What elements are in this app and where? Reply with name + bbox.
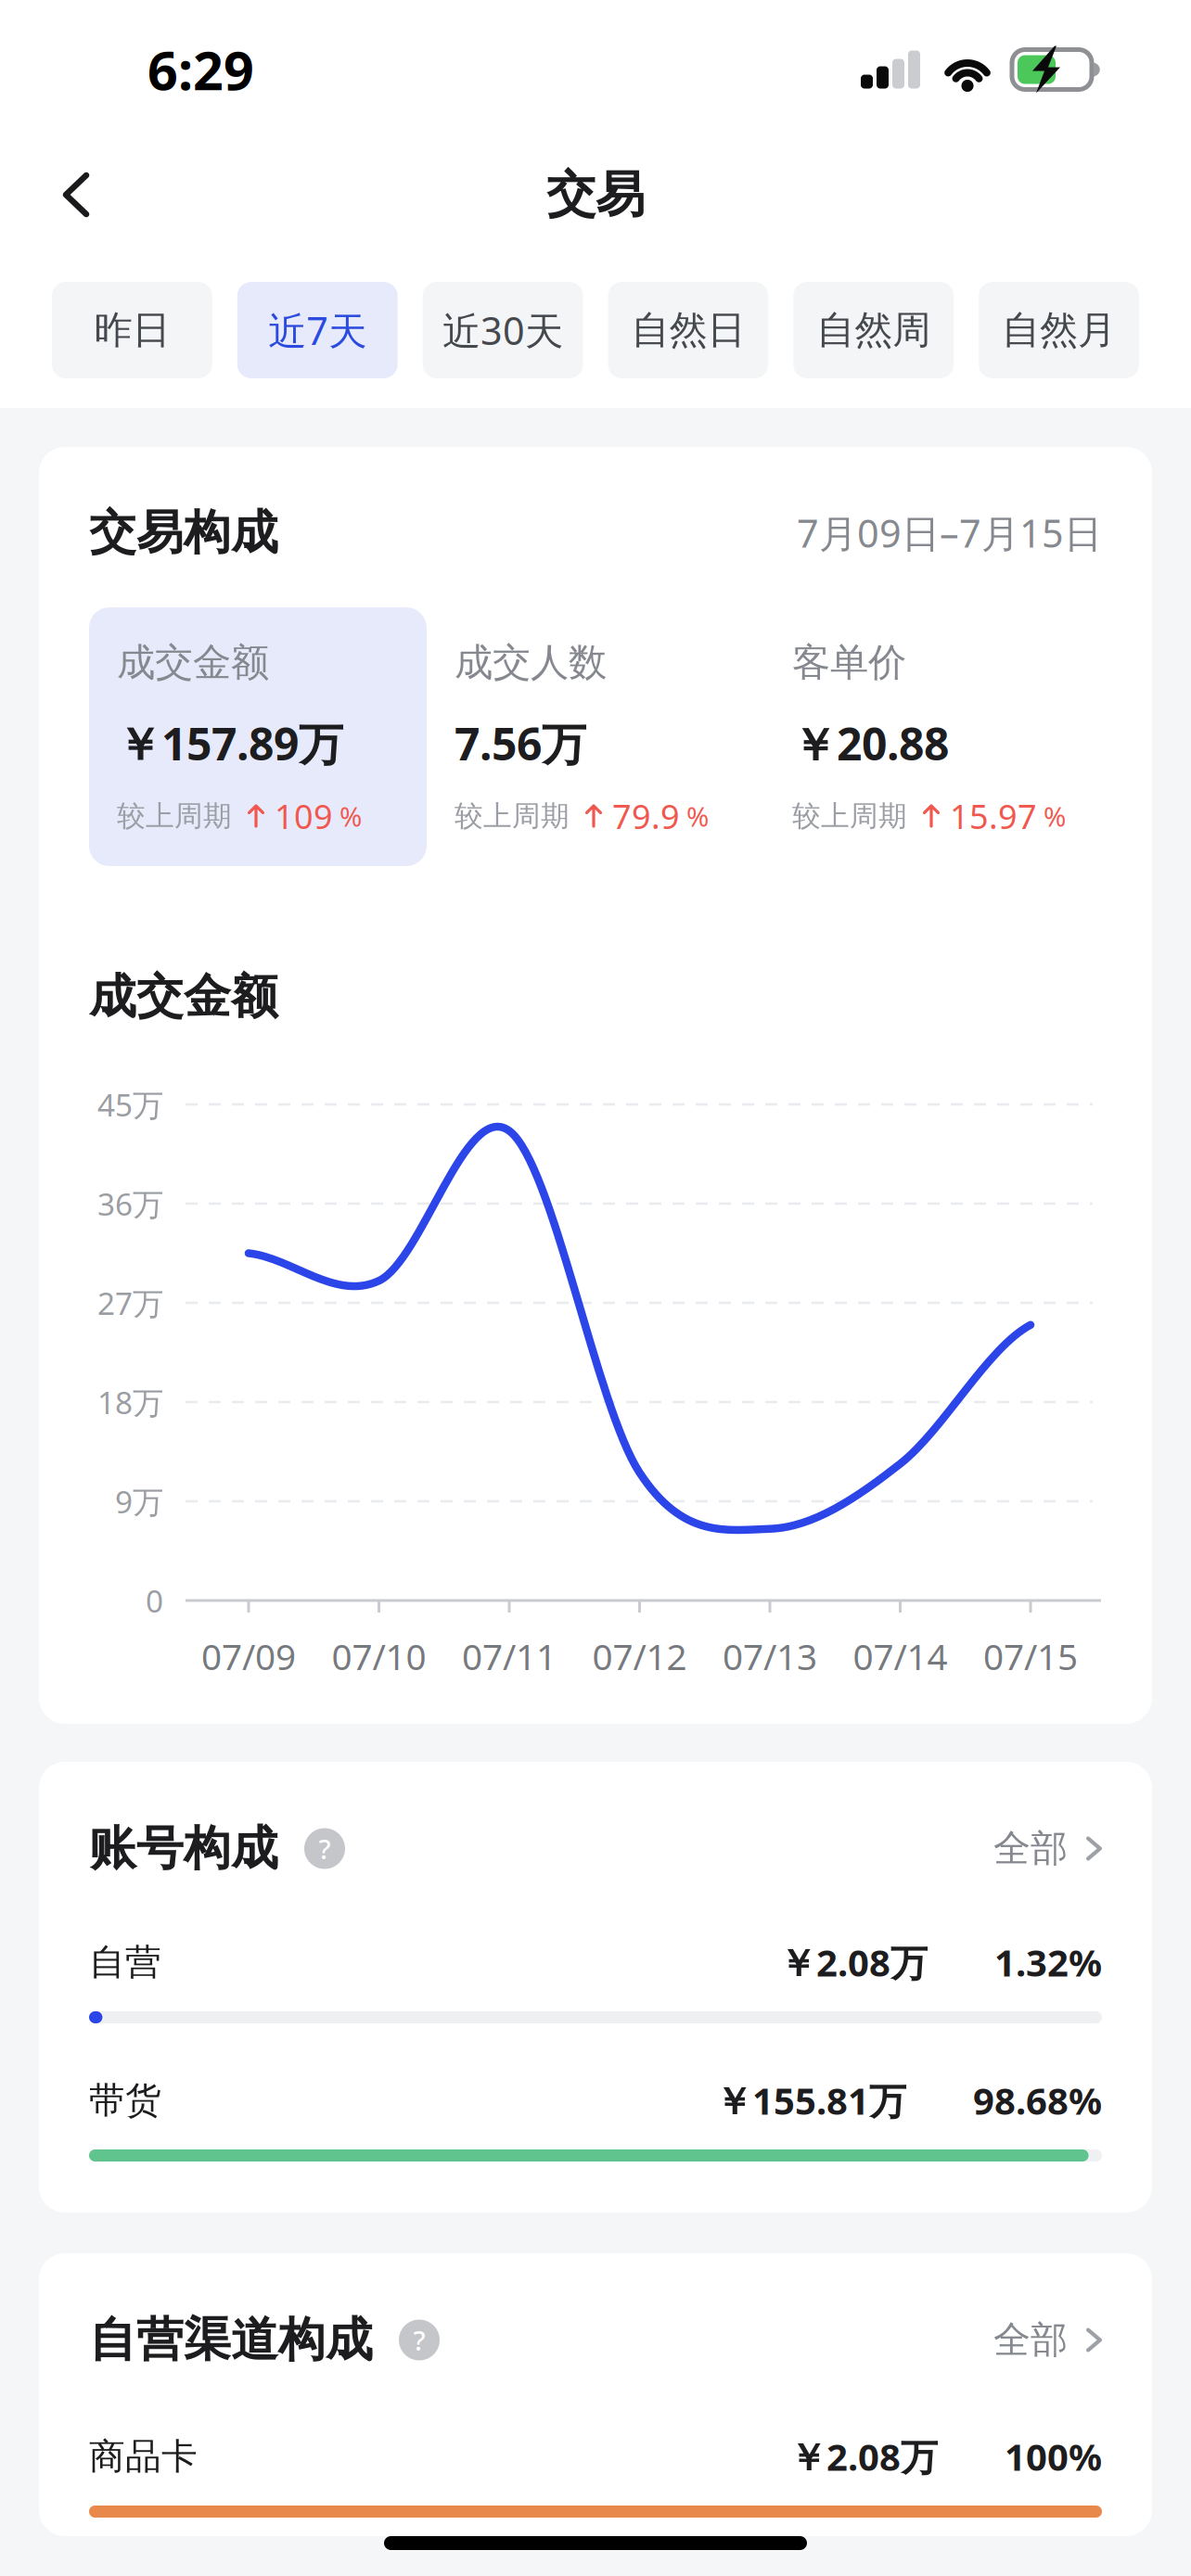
- staticText: 07/13: [723, 1632, 817, 1680]
- staticText: 9万: [115, 1481, 163, 1522]
- staticText: 07/12: [592, 1632, 687, 1680]
- button[interactable]: 近7天: [237, 282, 398, 378]
- staticText: 近30天: [443, 305, 563, 356]
- staticText: 36万: [97, 1183, 163, 1224]
- staticText: 18万: [97, 1382, 163, 1423]
- staticText: 45万: [97, 1084, 163, 1125]
- staticText: 109: [275, 794, 333, 838]
- staticText: 客单价: [792, 639, 906, 686]
- staticText: 1.32%: [994, 1937, 1102, 1987]
- staticText: 较上周期: [117, 799, 232, 834]
- staticText: 自营: [89, 1940, 161, 1984]
- staticText: 0: [146, 1580, 163, 1621]
- staticText: 07/11: [462, 1632, 557, 1680]
- staticText: 交易: [546, 164, 645, 225]
- staticText: 交易构成: [89, 504, 278, 562]
- staticText: 商品卡: [89, 2434, 198, 2478]
- staticText: 7.56万: [455, 714, 586, 773]
- staticText: %: [339, 798, 362, 834]
- staticText: 全部: [993, 1826, 1068, 1871]
- staticText: ￥155.81万: [715, 2076, 906, 2125]
- staticText: 近7天: [268, 305, 367, 356]
- button[interactable]: 自然周: [793, 282, 954, 378]
- staticText: ?: [413, 2322, 425, 2358]
- staticText: 成交人数: [455, 639, 607, 686]
- staticText: 成交金额: [89, 968, 278, 1026]
- staticText: 27万: [97, 1282, 163, 1323]
- staticText: ?: [319, 1830, 331, 1867]
- staticText: 带货: [89, 2078, 161, 2122]
- staticText: 昨日: [94, 307, 170, 354]
- staticText: 79.9: [612, 794, 680, 838]
- staticText: 98.68%: [973, 2076, 1102, 2125]
- staticText: 自营渠道构成: [89, 2311, 373, 2369]
- staticText: 较上周期: [792, 799, 907, 834]
- staticText: 自然日: [631, 307, 745, 354]
- staticText: 07/09: [201, 1632, 296, 1680]
- button[interactable]: 自然月: [979, 282, 1139, 378]
- button[interactable]: 自然日: [608, 282, 768, 378]
- staticText: 成交金额: [117, 639, 269, 686]
- staticText: 7月09日–7月15日: [797, 507, 1102, 558]
- staticText: 6:29: [147, 34, 254, 105]
- staticText: 较上周期: [455, 799, 570, 834]
- button[interactable]: 返回: [30, 148, 122, 241]
- staticText: 07/15: [983, 1632, 1078, 1680]
- staticText: 15.97: [950, 794, 1037, 838]
- button[interactable]: 全部: [993, 2317, 1102, 2363]
- button[interactable]: 近30天: [423, 282, 583, 378]
- staticText: 自然月: [1002, 307, 1116, 354]
- staticText: ￥157.89万: [117, 714, 343, 773]
- button[interactable]: 昨日: [52, 282, 212, 378]
- staticText: ￥20.88: [792, 714, 949, 773]
- staticText: 07/10: [332, 1632, 426, 1680]
- staticText: ￥2.08万: [779, 1937, 928, 1987]
- staticText: ￥2.08万: [789, 2432, 938, 2481]
- staticText: %: [686, 798, 709, 834]
- staticText: 07/14: [853, 1632, 948, 1680]
- staticText: 账号构成: [89, 1820, 278, 1877]
- staticText: %: [1044, 798, 1066, 834]
- button[interactable]: 说明: [304, 1828, 345, 1869]
- staticText: 自然周: [816, 307, 931, 354]
- staticText: 100%: [1005, 2432, 1102, 2481]
- button[interactable]: 全部: [993, 1826, 1102, 1871]
- button[interactable]: 说明: [399, 2320, 440, 2360]
- staticText: 全部: [993, 2317, 1068, 2363]
